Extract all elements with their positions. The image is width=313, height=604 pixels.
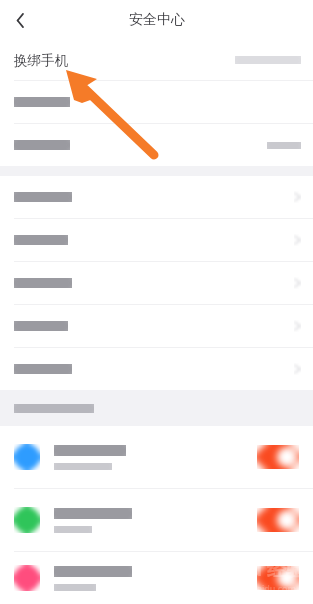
- button[interactable]: 换绑手机: [0, 40, 313, 80]
- button[interactable]: [0, 552, 313, 604]
- staticText: Baidu 经验: [208, 556, 305, 582]
- button[interactable]: Back: [0, 0, 40, 40]
- button[interactable]: [0, 176, 313, 218]
- staticText: 安全中心: [129, 11, 185, 29]
- staticText: jingyan.baidu.com: [218, 582, 296, 594]
- button[interactable]: [0, 124, 313, 166]
- button[interactable]: [0, 348, 313, 390]
- button[interactable]: [0, 262, 313, 304]
- button[interactable]: [0, 426, 313, 488]
- staticText: 换绑手机: [14, 52, 68, 69]
- button[interactable]: [0, 81, 313, 123]
- button[interactable]: [0, 219, 313, 261]
- button[interactable]: [0, 305, 313, 347]
- button[interactable]: [0, 489, 313, 551]
